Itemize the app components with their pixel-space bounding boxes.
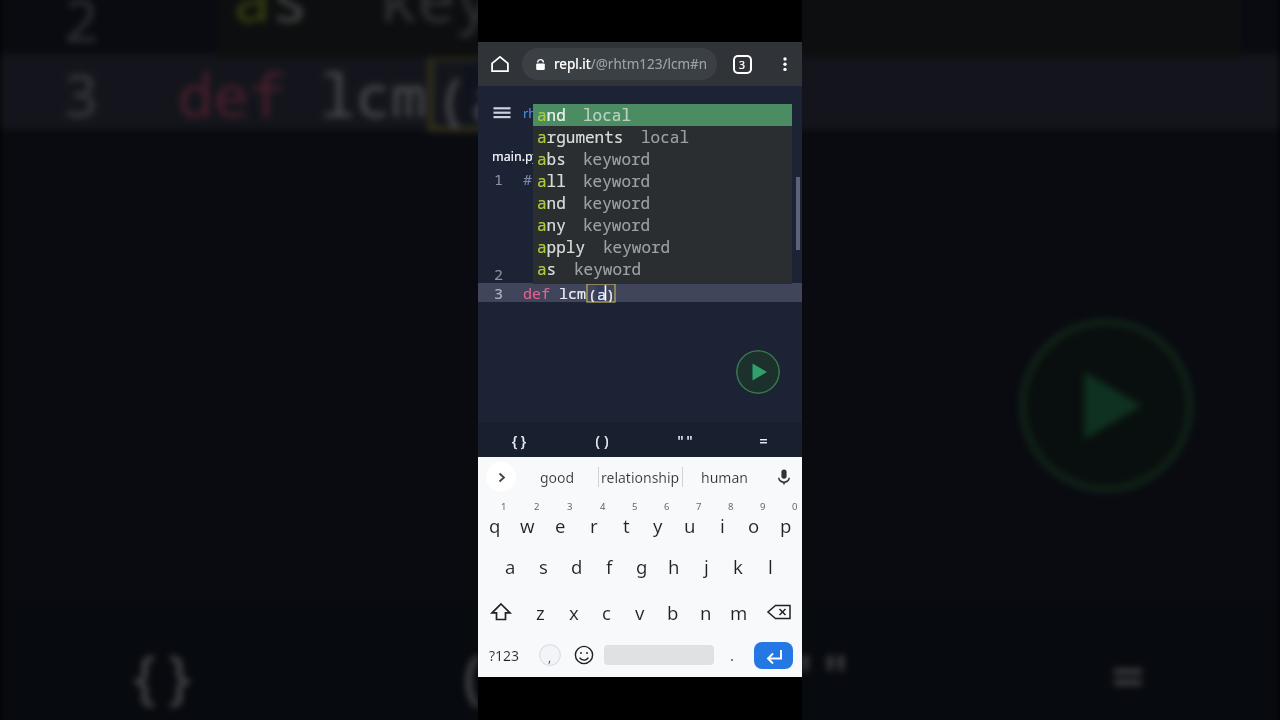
button[interactable]: . — [720, 635, 745, 675]
staticText: rhtm123 / lcm — [523, 104, 609, 122]
button[interactable]: = — [734, 422, 794, 457]
button[interactable]: Home — [478, 42, 522, 86]
button[interactable]: () — [371, 603, 608, 720]
button[interactable]: {} — [43, 603, 280, 720]
button[interactable]: ?123 — [478, 635, 530, 675]
staticText: j — [704, 554, 709, 579]
staticText: def lcm — [178, 54, 431, 129]
button[interactable]: as — [533, 258, 792, 280]
staticText: human — [701, 468, 748, 487]
staticText: abs — [537, 148, 566, 170]
button[interactable]: Run — [1019, 319, 1193, 492]
button[interactable]: 7 — [674, 497, 706, 543]
button[interactable]: Shift — [478, 589, 524, 635]
button[interactable]: 9 — [738, 497, 770, 543]
button[interactable]: k — [722, 543, 754, 589]
staticText: d — [571, 554, 583, 579]
button[interactable]: "" — [699, 603, 936, 720]
staticText: and — [537, 104, 566, 126]
button[interactable]: {} — [489, 422, 549, 457]
button[interactable]: = — [1011, 603, 1248, 720]
staticText: v — [635, 600, 645, 625]
staticText: local — [583, 104, 632, 126]
button[interactable]: m — [722, 589, 755, 635]
staticText: 8 — [728, 500, 734, 513]
button[interactable]: 6 — [642, 497, 674, 543]
button[interactable]: h — [658, 543, 690, 589]
staticText: i — [720, 513, 725, 538]
staticText: 3 — [494, 283, 504, 302]
button[interactable]: Run — [736, 350, 780, 394]
button[interactable]: relationship — [599, 457, 682, 497]
button[interactable]: human — [683, 457, 766, 497]
button[interactable]: good — [516, 457, 598, 497]
button[interactable]: "" — [655, 422, 715, 457]
button[interactable]: all — [533, 170, 792, 192]
button[interactable]: b — [656, 589, 689, 635]
button[interactable]: 0 — [770, 497, 802, 543]
button[interactable]: x — [557, 589, 590, 635]
button[interactable]: s — [527, 543, 560, 589]
button[interactable]: Backspace — [755, 589, 802, 635]
button[interactable]: () — [572, 422, 632, 457]
staticText: local — [641, 126, 690, 148]
button[interactable]: Emoji — [570, 635, 598, 675]
staticText: keyword — [379, 0, 648, 42]
button[interactable]: More suggestions — [486, 462, 516, 492]
button[interactable]: 1 — [478, 497, 511, 543]
staticText: 5 — [632, 500, 638, 513]
staticText: 1 — [494, 169, 504, 188]
staticText: q — [489, 513, 501, 538]
button[interactable]: 3 — [544, 497, 577, 543]
button[interactable]: c — [590, 589, 623, 635]
button[interactable]: n — [689, 589, 722, 635]
button[interactable]: as — [217, 0, 1240, 42]
staticText: keyword — [583, 148, 651, 170]
button[interactable]: 8 — [706, 497, 738, 543]
button[interactable]: More options — [767, 42, 802, 86]
staticText: z — [536, 600, 545, 625]
button[interactable]: 5 — [610, 497, 642, 543]
button[interactable]: a — [494, 543, 527, 589]
button[interactable]: j — [690, 543, 722, 589]
button[interactable]: Comma — [530, 635, 570, 675]
button[interactable]: Voice input — [766, 457, 802, 497]
staticText: () — [454, 635, 529, 714]
staticText: main.py — [492, 148, 539, 165]
staticText: 9 — [760, 500, 766, 513]
staticText: n — [700, 600, 712, 625]
button[interactable]: d — [560, 543, 593, 589]
button[interactable]: Tabs — [717, 42, 767, 86]
button[interactable]: arguments — [533, 126, 792, 148]
button[interactable]: v — [623, 589, 656, 635]
button[interactable]: 4 — [577, 497, 610, 543]
staticText: all — [537, 170, 566, 192]
button[interactable]: and — [533, 104, 792, 126]
staticText: o — [748, 513, 760, 538]
button[interactable]: z — [524, 589, 557, 635]
staticText: as — [537, 258, 557, 280]
button[interactable]: repl.it/@rhtm123/lcm#n — [522, 48, 717, 80]
staticText: () — [593, 430, 612, 450]
staticText: {} — [510, 430, 529, 450]
staticText: = — [759, 430, 769, 450]
button[interactable]: any — [533, 214, 792, 236]
staticText: h — [668, 554, 680, 579]
button[interactable]: Space — [598, 635, 720, 675]
staticText: , — [548, 649, 552, 665]
button[interactable]: Menu — [491, 102, 513, 124]
staticText: 0 — [792, 500, 798, 513]
staticText: good — [540, 468, 575, 487]
button[interactable]: apply — [533, 236, 792, 258]
staticText: keyword — [574, 258, 642, 280]
button[interactable]: g — [626, 543, 658, 589]
staticText: 1 — [501, 500, 507, 513]
button[interactable]: l — [754, 543, 786, 589]
button[interactable]: and — [533, 192, 792, 214]
staticText: keyword — [583, 170, 651, 192]
button[interactable]: Enter — [754, 642, 793, 669]
button[interactable]: abs — [533, 148, 792, 170]
button[interactable]: 2 — [511, 497, 544, 543]
button[interactable]: f — [593, 543, 626, 589]
staticText: # lcm of two numbers — [523, 169, 704, 188]
